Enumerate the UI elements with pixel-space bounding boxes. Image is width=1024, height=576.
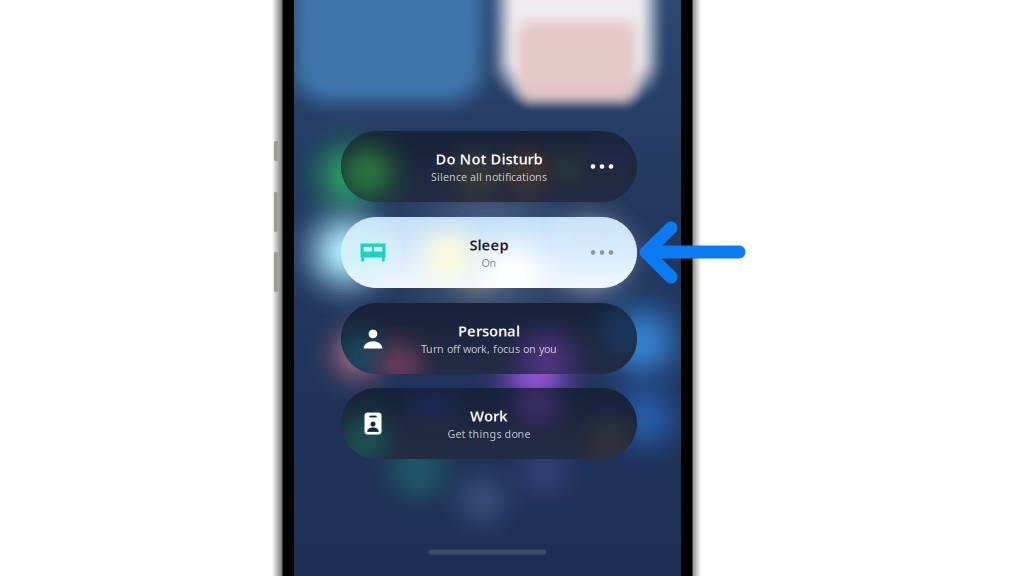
staticText: Work bbox=[470, 406, 508, 426]
staticText: Do Not Disturb bbox=[435, 149, 542, 169]
button[interactable]: Do Not Disturb bbox=[341, 131, 637, 202]
staticText: Turn off work, focus on you bbox=[421, 342, 557, 356]
button[interactable]: Sleep bbox=[341, 217, 637, 288]
staticText: Silence all notifications bbox=[431, 170, 547, 184]
staticText: On bbox=[481, 256, 496, 270]
staticText: Sleep bbox=[469, 235, 508, 255]
staticText: Get things done bbox=[447, 427, 530, 441]
button[interactable]: Work bbox=[341, 388, 637, 459]
button[interactable]: Personal bbox=[341, 303, 637, 374]
staticText: Personal bbox=[458, 321, 520, 341]
